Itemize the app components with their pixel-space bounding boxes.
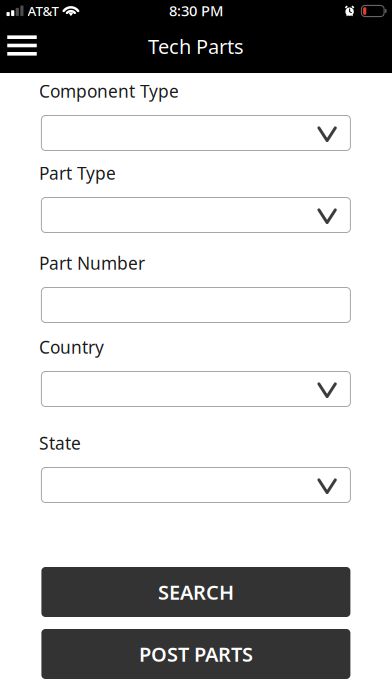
staticText: Component Type — [39, 79, 179, 102]
staticText: Part Number — [39, 251, 145, 274]
staticText: SEARCH — [158, 579, 234, 605]
staticText: 8:30 PM — [169, 1, 223, 20]
button[interactable]: Menu — [0, 20, 46, 71]
button[interactable] — [41, 371, 350, 406]
button[interactable]: POST PARTS — [41, 629, 350, 679]
button[interactable] — [41, 287, 350, 322]
button[interactable] — [41, 197, 350, 232]
staticText: POST PARTS — [139, 641, 253, 667]
staticText: State — [39, 431, 81, 454]
staticText: Part Type — [39, 161, 116, 184]
button[interactable] — [41, 115, 350, 150]
button[interactable] — [41, 467, 350, 502]
staticText: AT&T — [27, 2, 58, 20]
staticText: Country — [39, 335, 104, 358]
staticText: Tech Parts — [148, 33, 244, 60]
button[interactable]: SEARCH — [41, 567, 350, 617]
